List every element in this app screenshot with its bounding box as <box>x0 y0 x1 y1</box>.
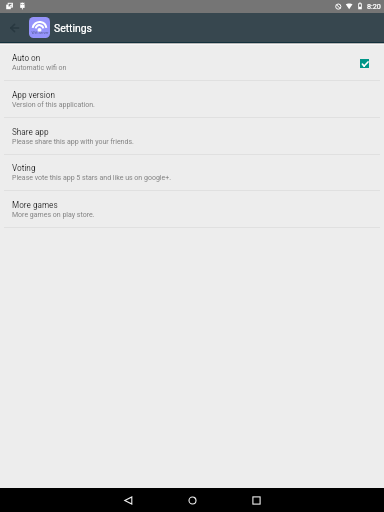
button[interactable]: App version <box>0 81 384 117</box>
staticText: Version of this application. <box>12 101 95 109</box>
staticText: 8:20 <box>367 2 381 10</box>
staticText: Please share this app with your friends. <box>12 138 134 146</box>
button[interactable]: Auto on <box>0 45 384 80</box>
staticText: Automatic wifi on <box>12 64 67 72</box>
button[interactable]: Recent apps <box>224 488 288 512</box>
staticText: More games <box>12 200 58 210</box>
button[interactable]: Home <box>160 488 224 512</box>
staticText: App version <box>12 90 56 100</box>
staticText: Settings <box>54 22 92 34</box>
button[interactable]: Back <box>96 488 160 512</box>
button[interactable]: Voting <box>0 155 384 190</box>
staticText: Share app <box>12 127 49 137</box>
staticText: Auto on <box>12 53 41 63</box>
button[interactable]: Auto on toggle <box>360 59 369 68</box>
staticText: Wifi Server <box>31 31 49 35</box>
button[interactable]: More games <box>0 191 384 227</box>
button[interactable]: Share app <box>0 118 384 154</box>
staticText: Voting <box>12 163 36 173</box>
staticText: More games on play store. <box>12 211 95 219</box>
staticText: Please vote this app 5 stars and like us… <box>12 174 172 182</box>
